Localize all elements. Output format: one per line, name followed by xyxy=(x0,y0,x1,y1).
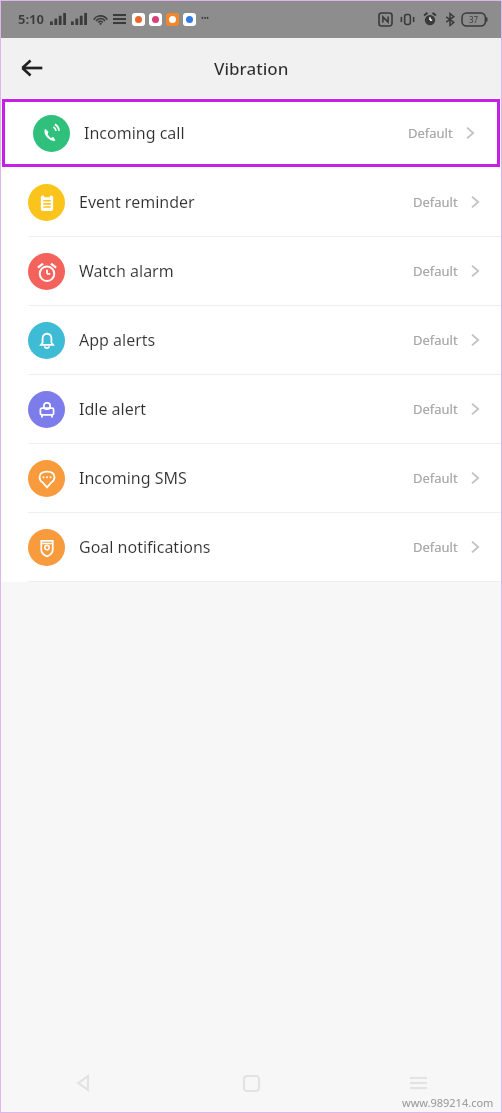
staticText: Default xyxy=(413,262,458,280)
staticText: Incoming SMS xyxy=(79,467,187,489)
staticText: Incoming call xyxy=(84,122,185,144)
staticText: 37 xyxy=(469,14,479,25)
button[interactable]: Watch alarm xyxy=(0,237,502,305)
button[interactable]: Goal notifications xyxy=(0,513,502,581)
button[interactable]: App alerts xyxy=(0,306,502,374)
staticText: Default xyxy=(408,124,453,142)
button[interactable]: Incoming call xyxy=(5,102,497,164)
button[interactable]: Event reminder xyxy=(0,168,502,236)
button[interactable]: Recent apps xyxy=(335,1053,502,1113)
staticText: Event reminder xyxy=(79,191,195,213)
staticText: Vibration xyxy=(214,57,289,80)
staticText: Goal notifications xyxy=(79,536,211,558)
button[interactable]: Back xyxy=(0,1053,168,1113)
staticText: Idle alert xyxy=(79,398,147,420)
staticText: Default xyxy=(413,193,458,211)
staticText: Default xyxy=(413,400,458,418)
button[interactable]: Incoming SMS xyxy=(0,444,502,512)
staticText: Default xyxy=(413,331,458,349)
staticText: App alerts xyxy=(79,329,156,351)
staticText: ••• xyxy=(201,14,209,24)
staticText: Watch alarm xyxy=(79,260,174,282)
button[interactable]: Home xyxy=(168,1053,335,1113)
button[interactable]: Back xyxy=(8,44,56,92)
staticText: www.989214.com xyxy=(402,1095,494,1110)
staticText: Default xyxy=(413,538,458,556)
staticText: Default xyxy=(413,469,458,487)
staticText: 5:10 xyxy=(18,10,44,28)
button[interactable]: Idle alert xyxy=(0,375,502,443)
